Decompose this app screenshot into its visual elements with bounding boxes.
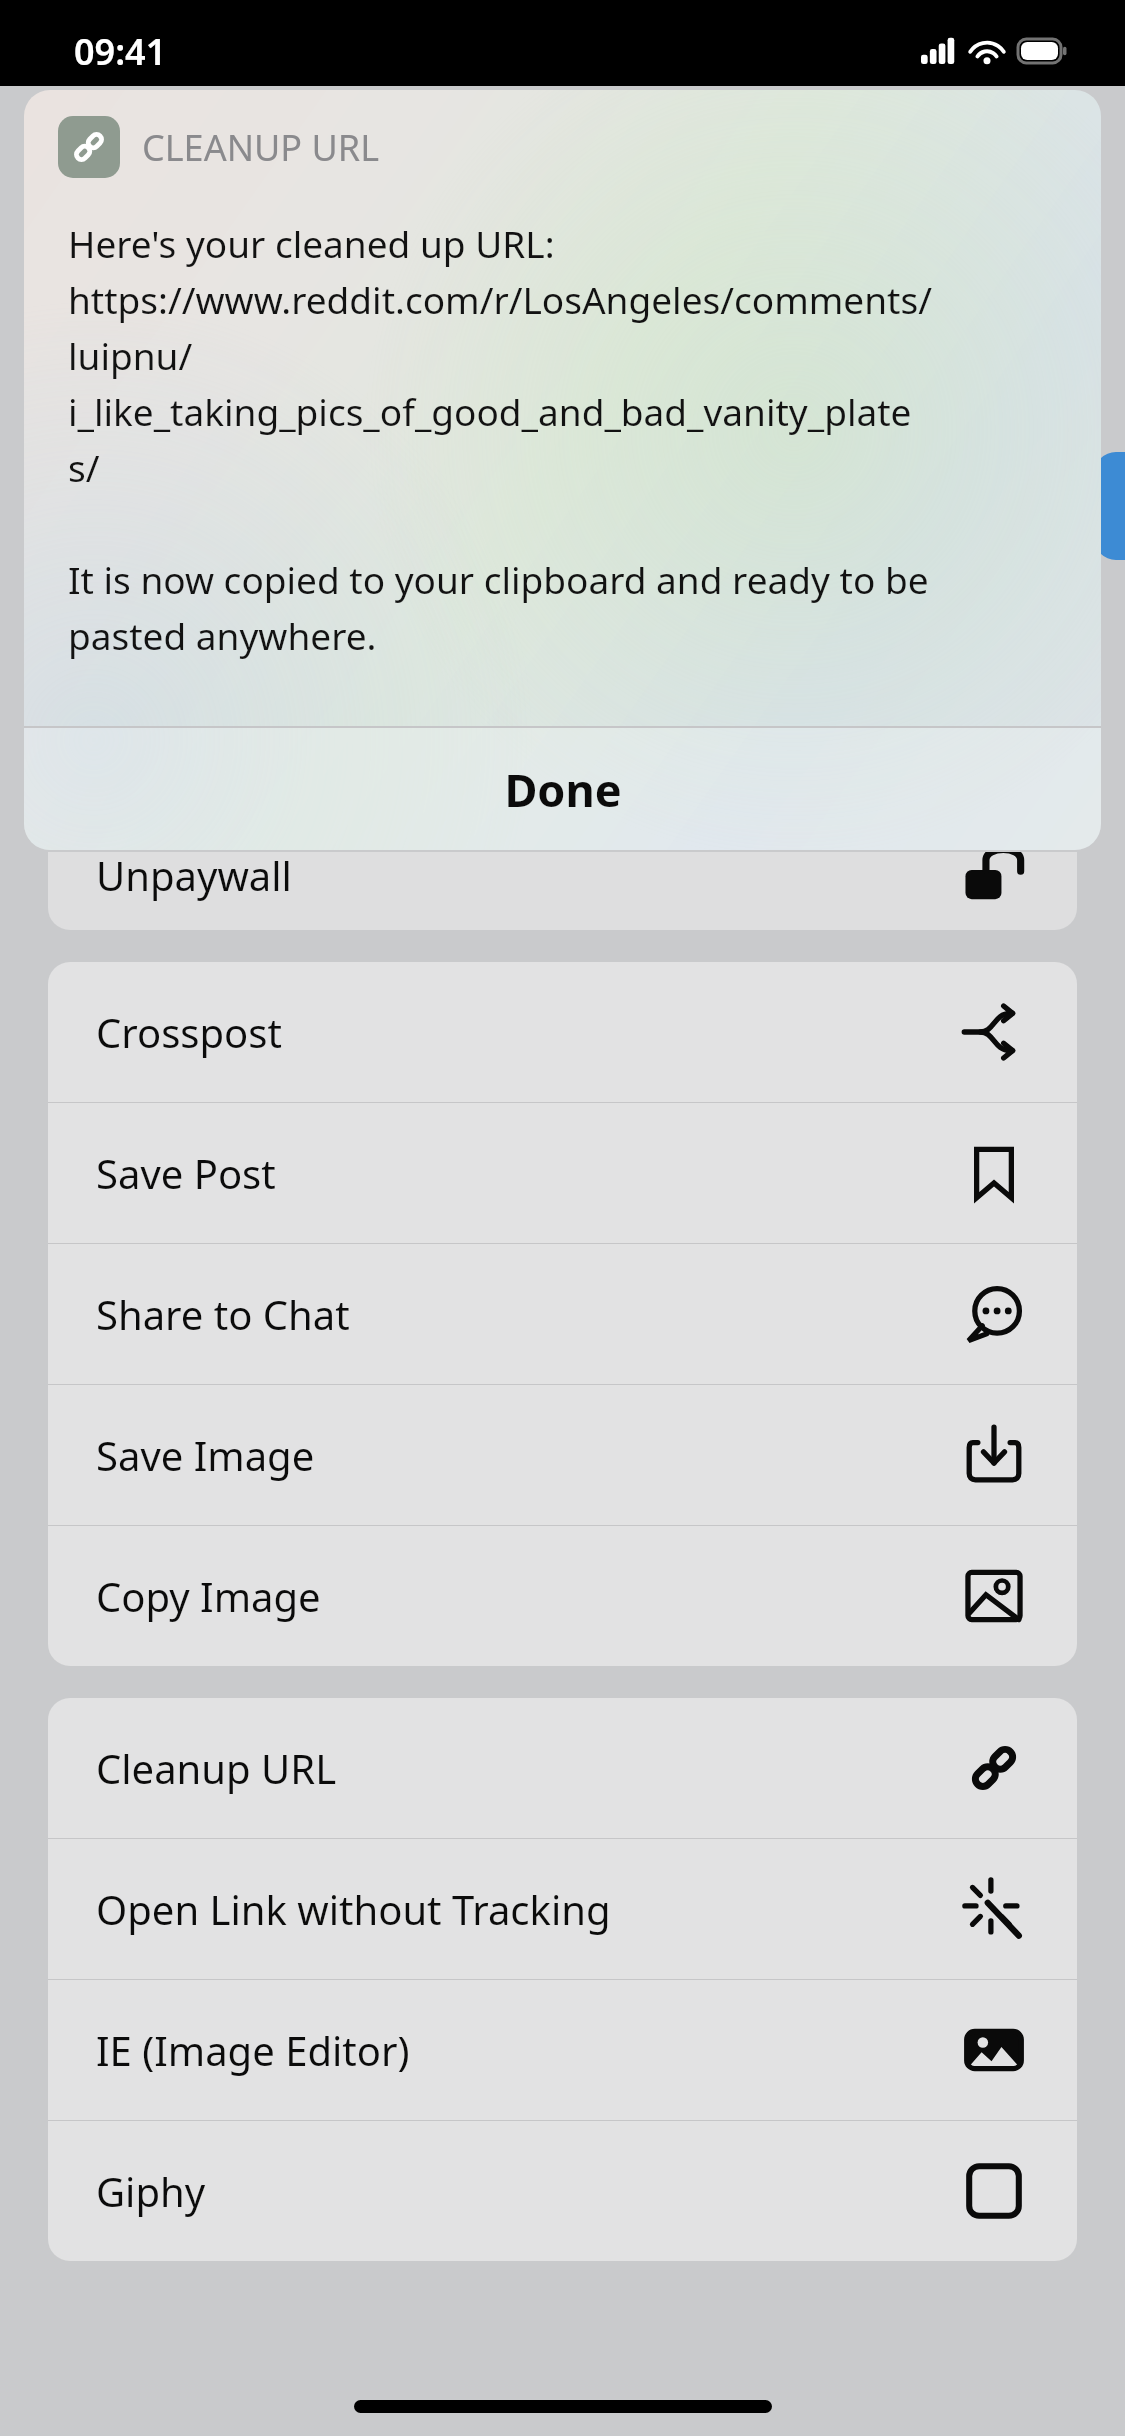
staticText: Cleanup URL xyxy=(96,1741,963,1795)
button[interactable]: Share to Chat xyxy=(48,1244,1077,1384)
button[interactable]: Save Post xyxy=(48,1103,1077,1243)
staticText: 09:41 xyxy=(74,27,167,76)
button[interactable]: Copy Image xyxy=(48,1526,1077,1666)
staticText: Giphy xyxy=(96,2164,963,2218)
button[interactable]: Cleanup URL xyxy=(48,1698,1077,1838)
staticText: Open Link without Tracking xyxy=(96,1882,963,1936)
staticText: Copy Image xyxy=(96,1569,963,1623)
staticText: Done xyxy=(504,759,622,820)
staticText: IE (Image Editor) xyxy=(96,2023,963,2077)
staticText: Here's your cleaned up URL: https://www.… xyxy=(68,218,932,661)
button[interactable]: IE (Image Editor) xyxy=(48,1980,1077,2120)
button[interactable]: Open Link without Tracking xyxy=(48,1839,1077,1979)
button[interactable]: Save Image xyxy=(48,1385,1077,1525)
button[interactable]: Done xyxy=(24,728,1101,850)
staticText: CLEANUP URL xyxy=(142,123,380,172)
staticText: Save Post xyxy=(96,1146,963,1200)
staticText: Share to Chat xyxy=(96,1287,963,1341)
button[interactable]: Giphy xyxy=(48,2121,1077,2261)
other: Unpaywall xyxy=(963,852,1025,906)
staticText: Unpaywall xyxy=(96,852,292,902)
button[interactable]: Unpaywall xyxy=(48,852,1077,930)
staticText: Crosspost xyxy=(96,1005,963,1059)
button[interactable]: Crosspost xyxy=(48,962,1077,1102)
staticText: Save Image xyxy=(96,1428,963,1482)
